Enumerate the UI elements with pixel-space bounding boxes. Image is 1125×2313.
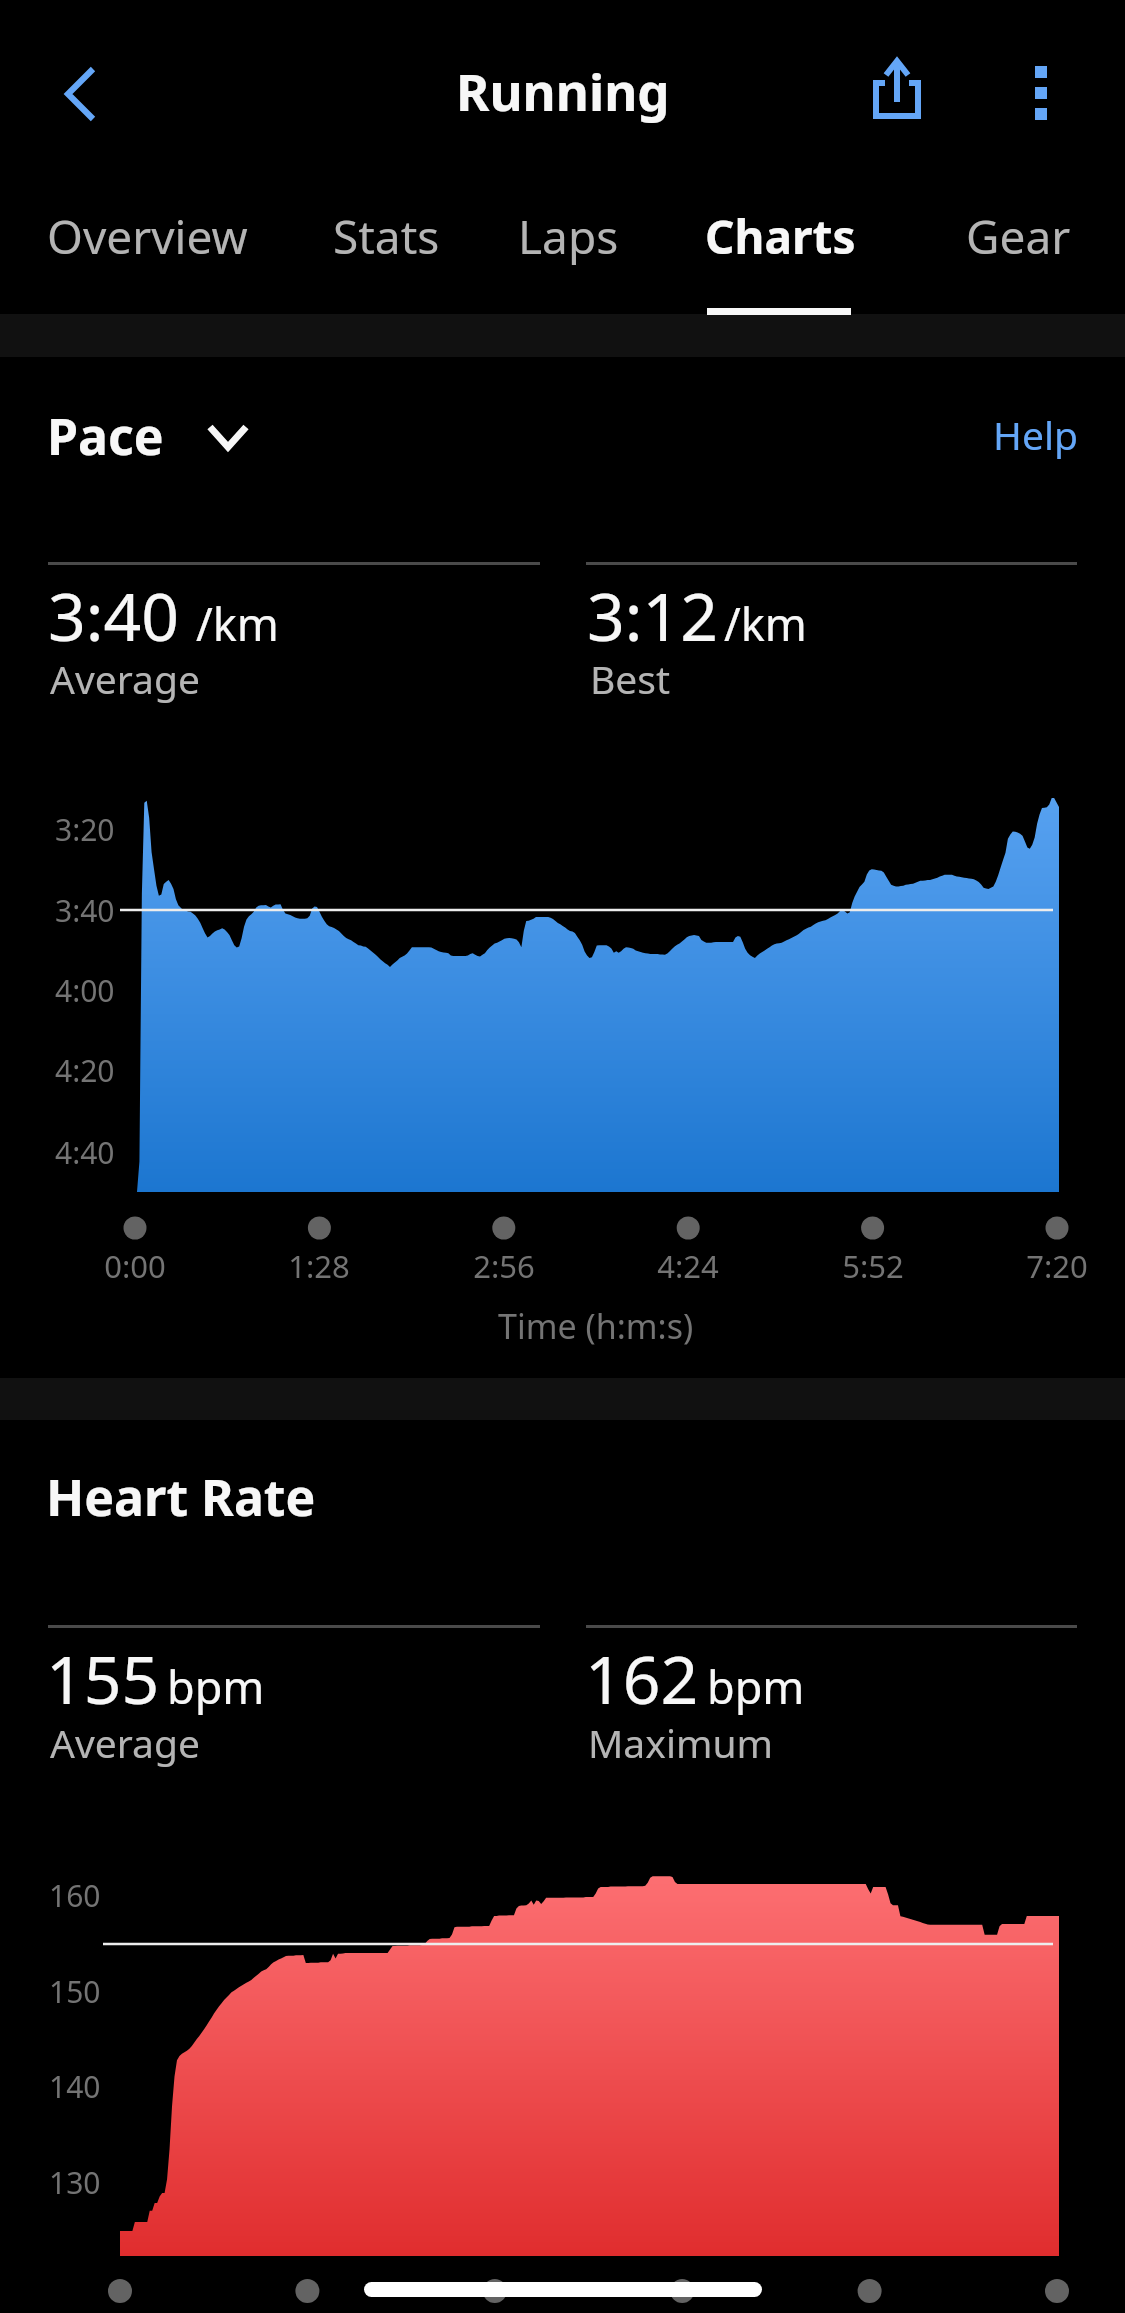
button[interactable]: Overview <box>25 186 268 314</box>
button[interactable]: Gear <box>944 186 1090 314</box>
button[interactable]: Help <box>963 390 1083 470</box>
staticText: Maximum <box>588 1716 773 1769</box>
button[interactable]: Back <box>36 41 140 145</box>
staticText: Stats <box>333 205 440 268</box>
staticText: 4:00 <box>55 970 115 1011</box>
staticText: 5:52 <box>842 1245 904 1287</box>
staticText: 130 <box>49 2162 101 2203</box>
staticText: Laps <box>518 205 619 268</box>
staticText: 3:12 <box>587 570 718 660</box>
staticText: Overview <box>47 205 248 268</box>
staticText: Average <box>50 1716 200 1769</box>
staticText: Charts <box>705 205 856 268</box>
staticText: 4:20 <box>55 1050 115 1091</box>
staticText: Best <box>590 652 671 705</box>
staticText: 4:40 <box>55 1132 115 1173</box>
button[interactable]: Pace <box>30 392 270 472</box>
staticText: Gear <box>966 205 1071 268</box>
staticText: 2:56 <box>473 1245 535 1287</box>
staticText: 0:00 <box>104 1245 166 1287</box>
button[interactable]: Laps <box>496 186 635 314</box>
staticText: 140 <box>49 2066 101 2107</box>
staticText: 4:24 <box>657 1245 719 1287</box>
staticText: /km <box>196 593 279 654</box>
staticText: bpm <box>707 1656 805 1717</box>
staticText: Average <box>50 652 200 705</box>
staticText: 160 <box>49 1875 101 1916</box>
button[interactable]: Stats <box>311 186 458 314</box>
staticText: 162 <box>585 1633 699 1723</box>
button[interactable]: Charts <box>683 186 874 314</box>
staticText: 3:40 <box>55 890 115 931</box>
staticText: /km <box>724 593 807 654</box>
staticText: Running <box>456 56 670 125</box>
staticText: Help <box>993 408 1078 461</box>
staticText: Pace <box>47 402 164 470</box>
staticText: 150 <box>49 1971 101 2012</box>
staticText: Time (h:m:s) <box>498 1303 694 1349</box>
staticText: 3:20 <box>55 809 115 850</box>
staticText: bpm <box>167 1656 265 1717</box>
staticText: 7:20 <box>1026 1245 1088 1287</box>
staticText: 3:40 <box>48 570 179 660</box>
staticText: 1:28 <box>288 1245 350 1287</box>
staticText: Heart Rate <box>46 1463 316 1531</box>
button[interactable]: More options <box>987 36 1095 144</box>
button[interactable]: Share <box>843 36 951 144</box>
staticText: 155 <box>46 1633 160 1723</box>
